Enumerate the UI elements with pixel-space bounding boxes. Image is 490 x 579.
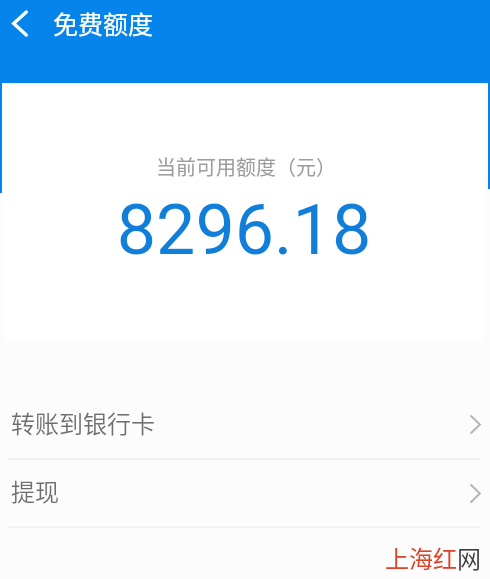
staticText: 8296.18 xyxy=(3,189,485,271)
staticText: 转账到银行卡 xyxy=(11,405,155,440)
staticText: 网 xyxy=(457,540,481,575)
button[interactable]: 提现 xyxy=(0,460,490,526)
staticText: 当前可用额度（元） xyxy=(5,152,485,181)
button[interactable]: Back xyxy=(0,0,40,46)
staticText: 免费额度 xyxy=(53,5,154,41)
staticText: 上海红 xyxy=(385,540,457,575)
button[interactable]: 转账到银行卡 xyxy=(0,391,490,458)
staticText: 提现 xyxy=(11,473,59,508)
